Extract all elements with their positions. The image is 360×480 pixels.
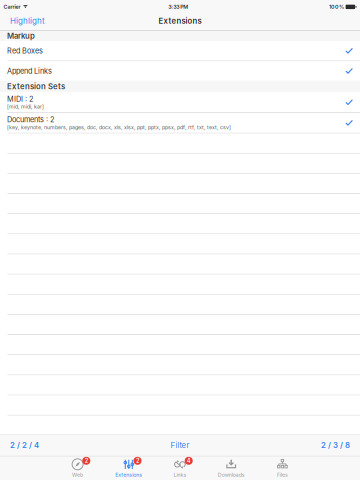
button[interactable]: 2 / 2 / 4 (5, 438, 44, 453)
button[interactable]: Highlight (6, 13, 49, 29)
staticText: Append Links (7, 66, 52, 75)
staticText: 2 (136, 457, 139, 464)
staticText: Carrier (3, 4, 20, 10)
staticText: Filter (170, 441, 189, 450)
button[interactable]: 2 (103, 456, 154, 480)
button[interactable]: 4 (154, 456, 206, 480)
button[interactable]: Red Boxes (0, 41, 360, 60)
staticText: Extensions (115, 472, 142, 478)
staticText: 100% (329, 4, 344, 10)
staticText: Links (173, 472, 186, 478)
staticText: Extension Sets (7, 82, 65, 91)
button[interactable]: 2 / 3 / 8 (316, 438, 355, 453)
staticText: Highlight (10, 16, 45, 26)
staticText: Red Boxes (7, 46, 43, 55)
staticText: [key, keynote, numbers, pages, doc, docx… (7, 124, 231, 130)
button[interactable]: 2 (52, 456, 103, 480)
button[interactable]: Downloads (206, 456, 257, 480)
staticText: MIDI : 2 (7, 95, 33, 103)
button[interactable]: Filter (164, 438, 195, 453)
button[interactable]: Files (257, 456, 308, 480)
staticText: Files (277, 472, 288, 478)
staticText: Downloads (218, 472, 245, 478)
staticText: Markup (7, 31, 35, 41)
staticText: Web (72, 472, 83, 478)
staticText: 2 (85, 457, 88, 464)
button[interactable]: Append Links (0, 61, 360, 81)
staticText: 2 / 2 / 4 (10, 441, 39, 450)
staticText: 3:33 PM (168, 4, 188, 10)
staticText: Documents : 2 (7, 115, 54, 124)
staticText: [mid, midi, kar] (7, 103, 44, 110)
staticText: Extensions (158, 16, 201, 26)
staticText: 4 (187, 457, 191, 464)
button[interactable]: Documents : 2 (0, 113, 360, 133)
staticText: 2 / 3 / 8 (321, 441, 350, 450)
button[interactable]: MIDI : 2 (0, 92, 360, 112)
